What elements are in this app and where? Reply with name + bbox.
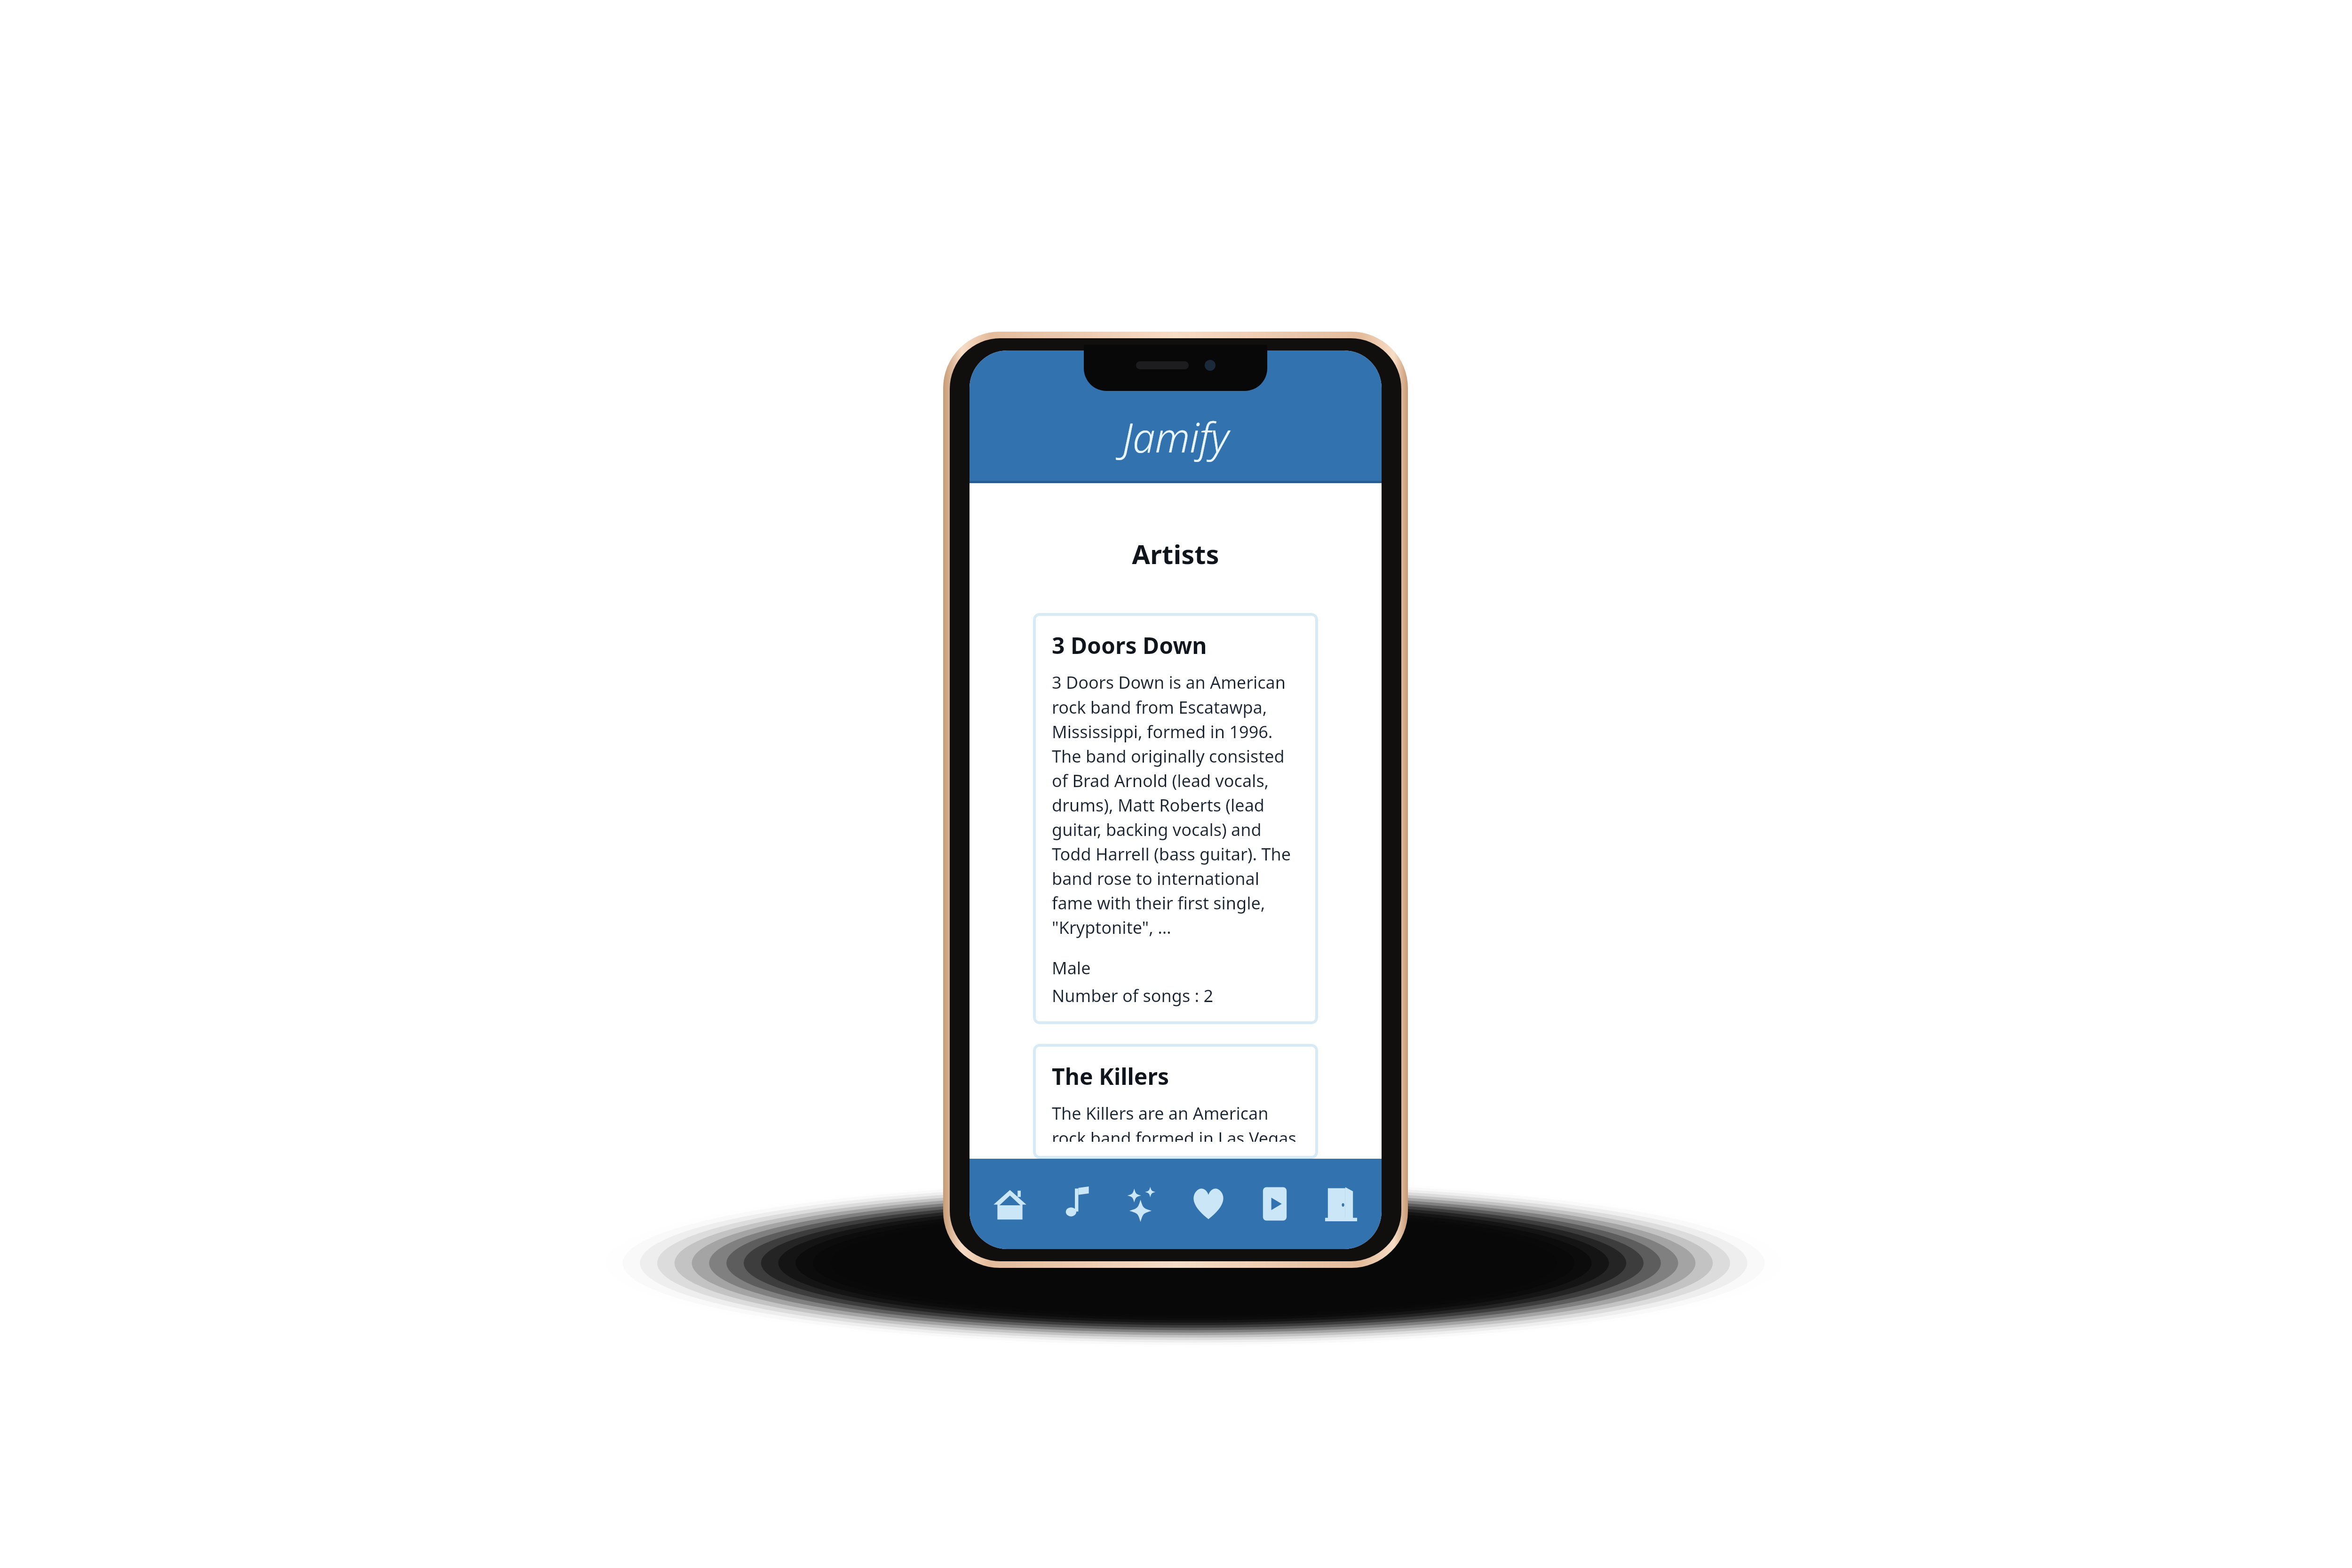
staticText: Male	[1052, 956, 1091, 979]
staticText: 3 Doors Down is an American rock band fr…	[1052, 671, 1299, 939]
button[interactable]: Favourites	[1183, 1178, 1234, 1230]
staticText: The Killers	[1052, 1061, 1169, 1091]
button[interactable]: Logout	[1315, 1178, 1367, 1230]
staticText: 3 Doors Down	[1052, 630, 1207, 661]
button[interactable]: Player	[1249, 1178, 1301, 1230]
button[interactable]: Music	[1050, 1178, 1102, 1230]
staticText: Artists	[969, 536, 1382, 572]
button[interactable]: Home	[984, 1178, 1036, 1230]
staticText: Jamify	[1122, 409, 1229, 464]
button[interactable]: 3 Doors Down	[1033, 613, 1318, 1024]
staticText: The Killers are an American rock band fo…	[1052, 1102, 1299, 1142]
button[interactable]: Discover	[1117, 1178, 1168, 1230]
staticText: Number of songs : 2	[1052, 984, 1214, 1007]
button[interactable]: The Killers	[1033, 1044, 1318, 1159]
